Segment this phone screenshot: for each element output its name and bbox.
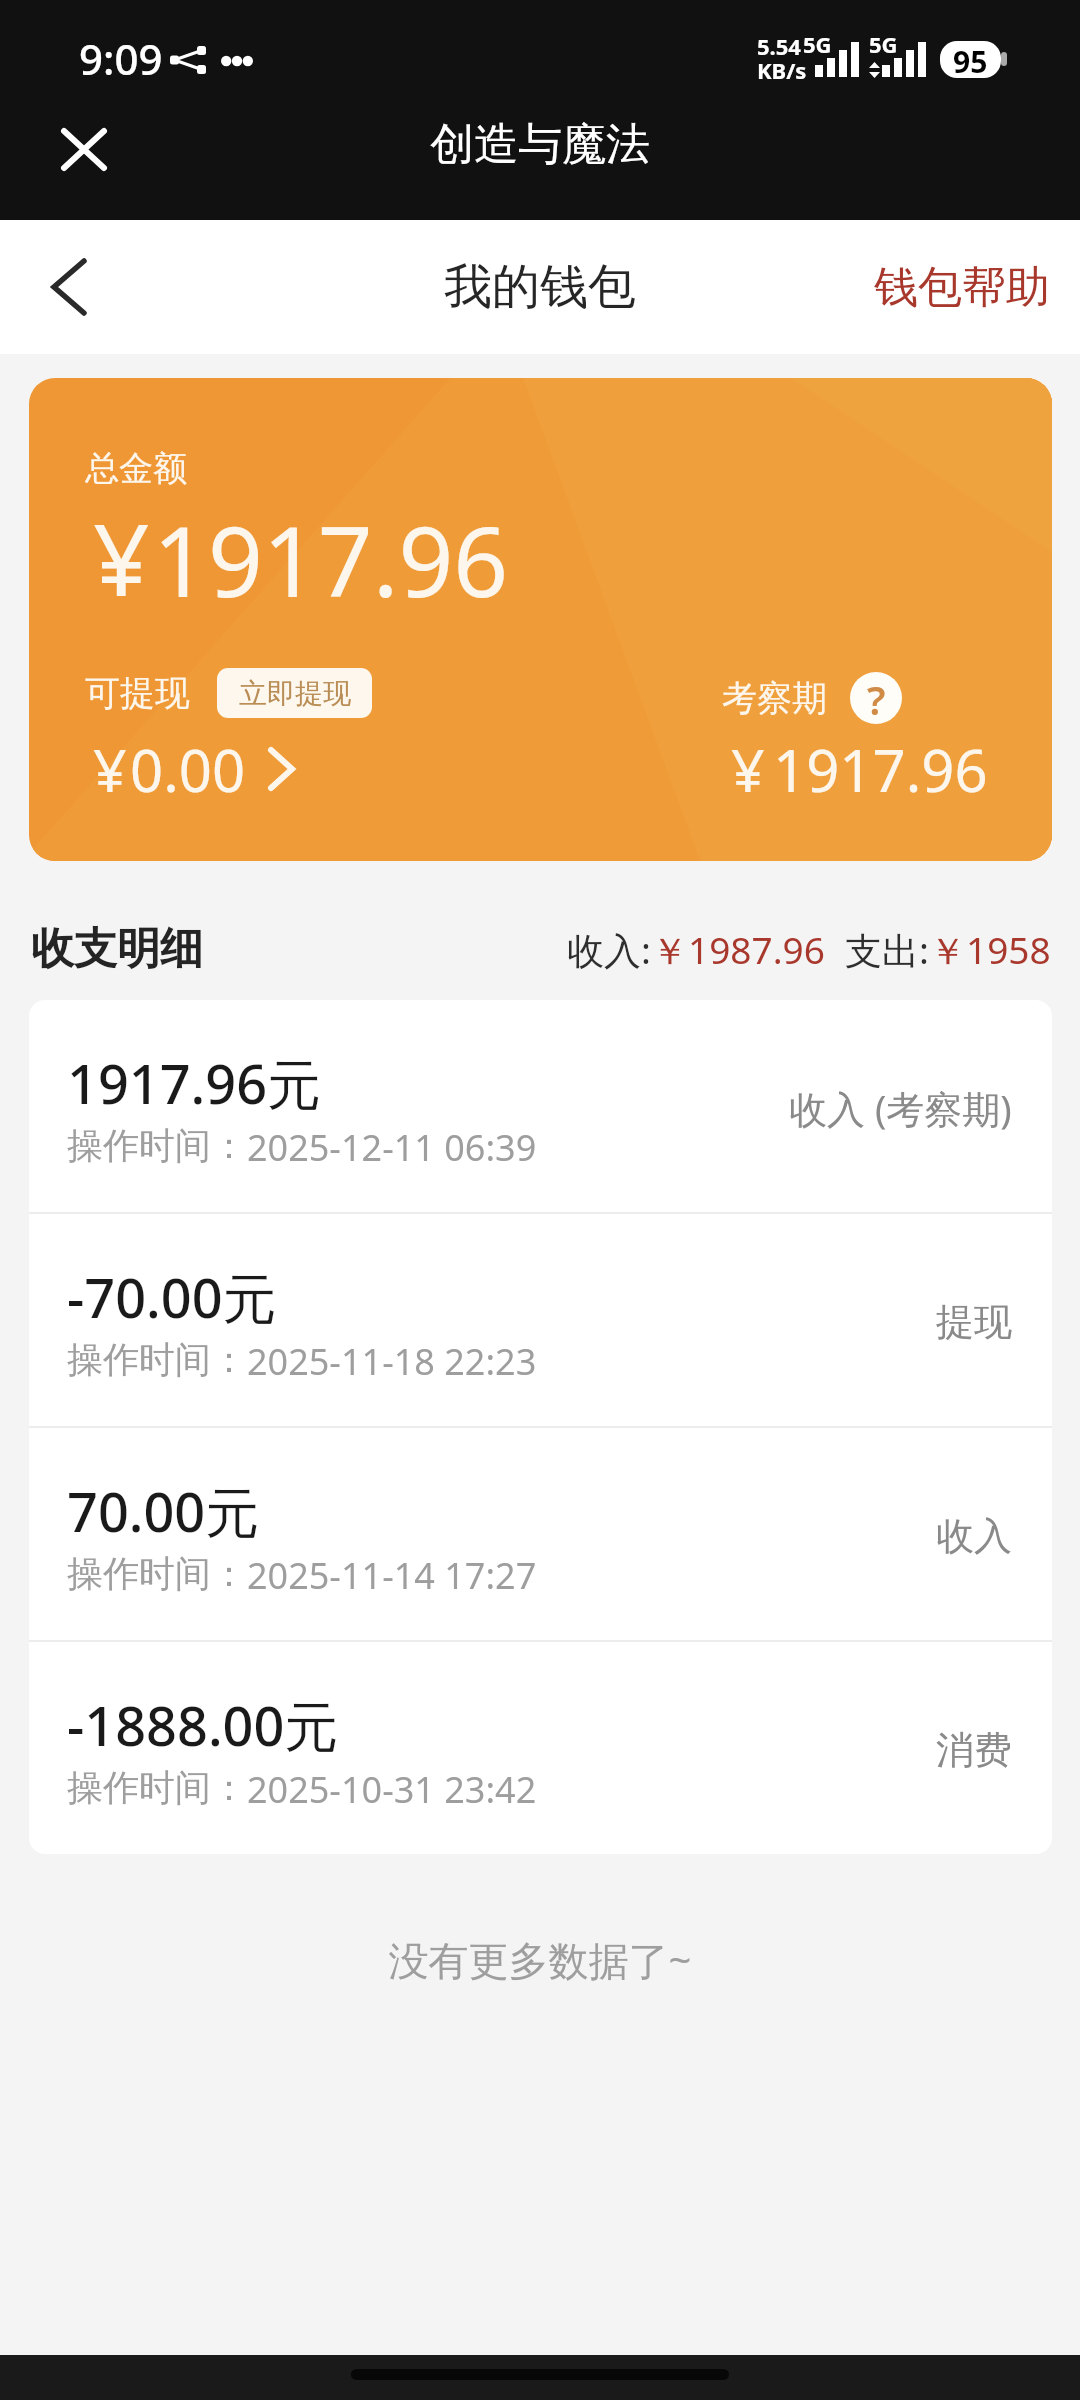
staticText: 1917.96: [153, 494, 509, 625]
button[interactable]: 70.00元: [29, 1428, 1052, 1640]
staticText: 支出:: [845, 924, 929, 975]
staticText: ￥1987.96: [651, 924, 825, 975]
staticText: 我的钱包: [444, 257, 636, 317]
button[interactable]: 钱包帮助: [844, 244, 1080, 331]
staticText: 操作时间：: [67, 1765, 247, 1810]
button[interactable]: -70.00元: [29, 1214, 1052, 1426]
staticText: -70.00元: [67, 1260, 277, 1334]
staticText: ￥1958: [929, 924, 1051, 975]
button[interactable]: 立即提现: [217, 668, 372, 718]
staticText: 70.00元: [67, 1474, 260, 1548]
staticText: 5G: [869, 29, 898, 59]
staticText: 收支明细: [31, 922, 203, 976]
staticText: 2025-11-14 17:27: [247, 1551, 537, 1600]
staticText: 没有更多数据了~: [0, 1932, 1080, 1987]
staticText: 2025-11-18 22:23: [247, 1337, 537, 1386]
staticText: 考察期: [722, 676, 827, 720]
staticText: 收入: [936, 1512, 1012, 1560]
button[interactable]: 1917.96元: [29, 1000, 1052, 1212]
staticText: 2025-10-31 23:42: [247, 1765, 537, 1814]
staticText: 操作时间：: [67, 1551, 247, 1596]
staticText: 消费: [936, 1726, 1012, 1774]
staticText: -1888.00元: [67, 1688, 339, 1762]
staticText: 钱包帮助: [874, 260, 1050, 315]
staticText: 收入 (考察期): [789, 1082, 1012, 1134]
staticText: ¥: [93, 729, 127, 809]
staticText: ?: [867, 672, 886, 724]
button[interactable]: Close: [44, 109, 124, 189]
staticText: 收入:: [567, 924, 651, 975]
button[interactable]: Back: [26, 244, 112, 330]
staticText: 5G: [803, 29, 832, 59]
staticText: 操作时间：: [67, 1123, 247, 1168]
staticText: KB/s: [757, 55, 807, 85]
staticText: 2025-12-11 06:39: [247, 1123, 537, 1172]
staticText: ¥: [93, 490, 150, 625]
staticText: 总金额: [85, 447, 187, 490]
button[interactable]: -1888.00元: [29, 1642, 1052, 1854]
staticText: 95: [953, 41, 988, 78]
staticText: 可提现: [85, 671, 190, 715]
button[interactable]: Help: [850, 672, 902, 724]
button[interactable]: ¥: [85, 721, 300, 815]
staticText: 1917.96元: [67, 1046, 322, 1120]
staticText: 5.54: [757, 31, 801, 61]
staticText: 1917.96: [773, 730, 988, 809]
staticText: 操作时间：: [67, 1337, 247, 1382]
staticText: 9:09: [79, 30, 163, 87]
staticText: 创造与魔法: [430, 117, 650, 172]
staticText: ¥: [731, 729, 765, 809]
staticText: 提现: [936, 1298, 1012, 1346]
staticText: 0.00: [130, 730, 246, 809]
staticText: 立即提现: [239, 676, 351, 711]
